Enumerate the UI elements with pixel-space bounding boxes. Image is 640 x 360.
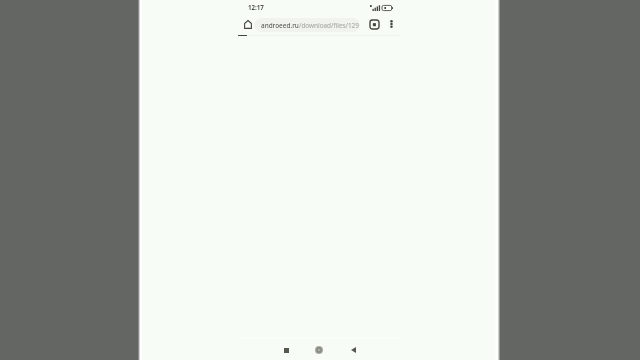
staticText: 12:17: [248, 3, 264, 11]
button[interactable]: Switch tabs: [367, 17, 381, 31]
button[interactable]: androeed.ru: [254, 18, 360, 32]
staticText: androeed.ru: [261, 21, 299, 30]
button[interactable]: More options: [384, 17, 398, 31]
button[interactable]: Back: [345, 342, 361, 358]
button[interactable]: Recent apps: [278, 342, 294, 358]
button[interactable]: Home: [311, 342, 327, 358]
button[interactable]: Home: [241, 18, 254, 31]
staticText: /download/files/129: [299, 21, 359, 30]
